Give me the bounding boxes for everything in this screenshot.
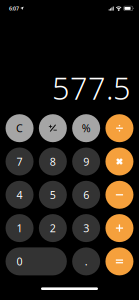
staticText: 9 xyxy=(83,154,89,169)
button[interactable]: 4 xyxy=(5,181,33,209)
staticText: 4 xyxy=(16,188,22,202)
staticText: 3 xyxy=(83,221,89,235)
button[interactable]: Subtract xyxy=(105,181,133,209)
button[interactable]: 9 xyxy=(72,147,100,175)
button[interactable]: 0 xyxy=(5,247,67,275)
button[interactable]: 6 xyxy=(72,181,100,209)
button[interactable]: . xyxy=(72,247,100,275)
staticText: 7 xyxy=(16,154,22,169)
button[interactable]: % xyxy=(72,114,100,142)
button[interactable]: Toggle sign xyxy=(39,114,67,142)
staticText: 5 xyxy=(50,188,56,202)
button[interactable]: 7 xyxy=(5,147,33,175)
button[interactable]: 8 xyxy=(39,147,67,175)
staticText: C xyxy=(16,121,23,135)
button[interactable]: Equals xyxy=(105,247,133,275)
staticText: % xyxy=(82,121,91,135)
staticText: 6 xyxy=(83,188,89,202)
staticText: 6:07 xyxy=(9,5,19,12)
button[interactable]: C xyxy=(5,114,33,142)
button[interactable]: Divide xyxy=(105,114,133,142)
staticText: 577.5 xyxy=(52,67,131,108)
staticText: 1 xyxy=(16,221,22,235)
staticText: 8 xyxy=(50,154,56,169)
staticText: 2 xyxy=(50,221,56,235)
button[interactable]: 2 xyxy=(39,214,67,242)
staticText: 0 xyxy=(16,254,22,268)
staticText: . xyxy=(85,254,88,268)
button[interactable]: 3 xyxy=(72,214,100,242)
button[interactable]: Add xyxy=(105,214,133,242)
button[interactable]: 5 xyxy=(39,181,67,209)
button[interactable]: Multiply xyxy=(105,147,133,175)
button[interactable]: 1 xyxy=(5,214,33,242)
